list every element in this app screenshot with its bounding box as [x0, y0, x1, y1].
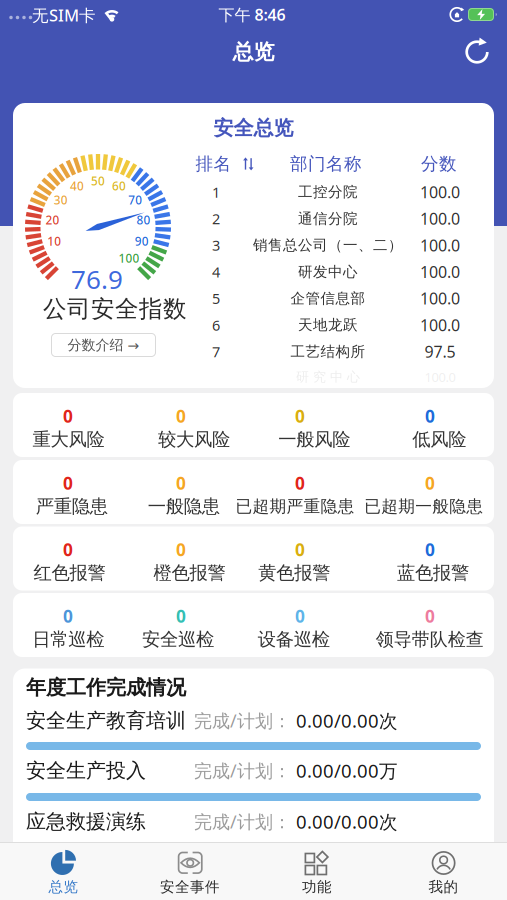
staticText: 0 [63, 604, 73, 628]
staticText: 黄色报警 [258, 561, 330, 585]
staticText: 无SIM卡 [32, 4, 96, 26]
staticText: 6 [212, 315, 220, 335]
staticText: 100.0 [420, 181, 460, 203]
button[interactable]: 排序 [241, 157, 254, 171]
staticText: 100 [119, 250, 140, 266]
staticText: 60 [112, 178, 126, 194]
staticText: 重大风险 [32, 428, 104, 451]
staticText: 100.0 [420, 234, 460, 256]
staticText: 公司安全指数 [43, 294, 187, 324]
staticText: 设备巡检 [258, 628, 330, 651]
button[interactable]: 我的 [394, 843, 494, 899]
staticText: 分数介绍 → [67, 336, 139, 354]
staticText: 工艺结构所 [290, 342, 365, 361]
staticText: 已超期严重隐患 [235, 496, 354, 517]
staticText: 红色报警 [33, 561, 105, 585]
staticText: 严重隐患 [36, 495, 108, 518]
staticText: 100.0 [424, 368, 455, 386]
staticText: 蓝色报警 [397, 561, 469, 585]
staticText: 研 究 中 心 [296, 369, 360, 385]
staticText: 0 [176, 604, 186, 628]
staticText: 下午 8:46 [218, 4, 285, 25]
staticText: 销售总公司（一、二） [253, 236, 403, 254]
button[interactable]: 总览 [13, 843, 113, 899]
staticText: 7 [212, 342, 220, 361]
staticText: 0 [176, 538, 186, 561]
staticText: 0.00/0.00次 [291, 809, 398, 834]
staticText: 0 [295, 604, 305, 628]
staticText: 100.0 [420, 287, 460, 309]
staticText: 排名 [195, 153, 231, 175]
staticText: 0 [425, 404, 435, 428]
staticText: 100.0 [420, 208, 460, 229]
staticText: 0 [425, 471, 435, 495]
staticText: 通信分院 [298, 209, 358, 228]
staticText: 企管信息部 [290, 289, 365, 308]
staticText: 低风险 [412, 428, 466, 451]
button[interactable]: 分数介绍 → [51, 333, 156, 357]
staticText: 0 [63, 404, 73, 428]
staticText: 97.5 [424, 341, 455, 362]
staticText: 0 [63, 471, 73, 495]
staticText: 76.9 [71, 261, 123, 297]
staticText: 我的 [429, 878, 459, 896]
staticText: 一般风险 [278, 428, 350, 451]
staticText: 3 [212, 235, 220, 255]
staticText: 0 [295, 471, 305, 495]
staticText: 30 [54, 192, 68, 208]
staticText: 20 [46, 212, 60, 228]
staticText: 5 [212, 288, 220, 308]
staticText: 0 [425, 538, 435, 561]
staticText: 工控分院 [298, 183, 358, 201]
staticText: 完成/计划： [194, 708, 291, 733]
staticText: 0 [176, 404, 186, 428]
staticText: 部门名称 [290, 153, 362, 175]
button[interactable]: 安全事件 [140, 843, 240, 899]
button[interactable]: 刷新 [457, 32, 497, 72]
staticText: 研发中心 [298, 263, 358, 281]
staticText: 80 [136, 212, 150, 228]
staticText: 安全生产教育培训 [26, 708, 186, 733]
staticText: 已超期一般隐患 [364, 496, 483, 517]
staticText: 0 [295, 538, 305, 561]
staticText: 50 [91, 173, 105, 189]
staticText: 一般隐患 [148, 495, 220, 518]
staticText: 日常巡检 [32, 628, 104, 651]
staticText: 安全总览 [213, 115, 293, 141]
staticText: 应急救援演练 [26, 809, 146, 834]
staticText: 总览 [48, 878, 78, 896]
staticText: 完成/计划： [194, 809, 291, 834]
staticText: 年度工作完成情况 [26, 675, 186, 700]
button[interactable]: 功能 [267, 843, 367, 899]
staticText: 完成/计划： [194, 758, 291, 783]
staticText: 90 [135, 233, 149, 249]
staticText: 100.0 [420, 261, 460, 283]
staticText: 较大风险 [158, 428, 230, 451]
staticText: 0.00/0.00次 [291, 708, 398, 733]
staticText: 2 [212, 209, 220, 228]
staticText: 分数 [421, 153, 457, 175]
staticText: 4 [212, 262, 220, 282]
staticText: 安全巡检 [142, 628, 214, 651]
staticText: 10 [47, 233, 61, 249]
staticText: 领导带队检查 [376, 628, 484, 651]
staticText: 0 [295, 404, 305, 428]
staticText: 功能 [302, 878, 332, 896]
staticText: 0 [425, 604, 435, 628]
staticText: 0.00/0.00万 [291, 758, 398, 783]
staticText: 天地龙跃 [298, 316, 358, 334]
staticText: 100.0 [420, 314, 460, 336]
staticText: 0 [176, 471, 186, 495]
staticText: 安全事件 [160, 878, 220, 896]
staticText: 0 [63, 538, 73, 561]
staticText: 1 [212, 182, 220, 202]
staticText: 总览 [232, 39, 274, 65]
staticText: 安全生产投入 [26, 758, 146, 783]
staticText: 40 [70, 178, 84, 194]
staticText: 70 [128, 192, 142, 208]
staticText: 橙色报警 [153, 561, 225, 585]
